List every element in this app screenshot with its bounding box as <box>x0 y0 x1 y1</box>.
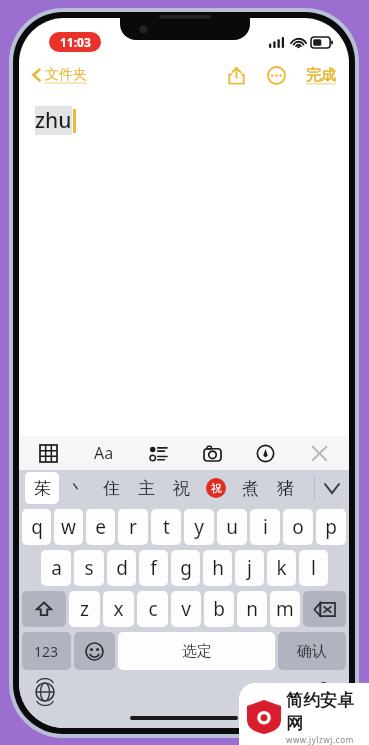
staticText: s <box>84 555 94 581</box>
button[interactable]: Markup <box>254 442 277 465</box>
button[interactable]: 123 <box>22 632 71 670</box>
button[interactable]: More options <box>264 63 289 88</box>
button[interactable]: 猪 <box>268 472 303 504</box>
button[interactable]: 文件夹 <box>27 63 91 87</box>
button[interactable]: 祝 <box>199 472 233 504</box>
button[interactable]: p <box>316 509 346 545</box>
button[interactable]: a <box>41 550 71 586</box>
button[interactable]: Emoji <box>74 632 115 670</box>
staticText: 简约安卓网 <box>286 690 369 734</box>
staticText: k <box>276 555 287 581</box>
button[interactable]: u <box>217 509 247 545</box>
button[interactable]: 住 <box>94 472 129 504</box>
staticText: h <box>212 555 224 581</box>
staticText: 确认 <box>297 642 327 661</box>
staticText: w <box>61 514 76 540</box>
button[interactable]: w <box>54 509 83 545</box>
button[interactable]: q <box>22 509 51 545</box>
button[interactable]: Dictation <box>312 678 335 706</box>
staticText: m <box>276 596 294 622</box>
staticText: 祝 <box>211 481 222 495</box>
button[interactable]: Aa <box>91 439 117 467</box>
button[interactable]: b <box>204 591 234 627</box>
button[interactable]: e <box>86 509 115 545</box>
button[interactable]: c <box>137 591 168 627</box>
button[interactable]: o <box>283 509 313 545</box>
button[interactable]: Table <box>37 442 60 465</box>
staticText: 住 <box>103 478 120 499</box>
button[interactable]: v <box>171 591 201 627</box>
staticText: zhu <box>35 106 72 135</box>
staticText: l <box>311 555 316 581</box>
button[interactable]: y <box>184 509 214 545</box>
button[interactable]: m <box>270 591 300 627</box>
staticText: i <box>263 514 268 540</box>
staticText: 丶 <box>68 478 85 499</box>
button[interactable]: k <box>267 550 296 586</box>
staticText: y <box>194 514 204 540</box>
button[interactable]: f <box>139 550 168 586</box>
staticText: r <box>129 514 137 540</box>
staticText: g <box>180 555 192 581</box>
button[interactable]: 煮 <box>233 472 268 504</box>
staticText: c <box>148 596 158 622</box>
button[interactable]: Close keyboard <box>308 442 331 465</box>
button[interactable]: t <box>151 509 181 545</box>
button[interactable]: Shift <box>22 591 66 627</box>
staticText: x <box>113 596 124 622</box>
button[interactable]: z <box>69 591 100 627</box>
staticText: d <box>116 555 128 581</box>
staticText: u <box>226 514 238 540</box>
button[interactable]: Checklist <box>147 442 170 465</box>
button[interactable]: d <box>107 550 136 586</box>
staticText: q <box>31 514 43 540</box>
staticText: f <box>150 555 157 581</box>
button[interactable]: 丶 <box>59 472 94 504</box>
button[interactable]: i <box>250 509 280 545</box>
button[interactable]: 祝 <box>164 472 199 504</box>
staticText: 11:03 <box>60 34 91 50</box>
button[interactable]: 完成 <box>303 63 339 88</box>
button[interactable]: Camera <box>201 442 224 465</box>
staticText: b <box>213 596 225 622</box>
button[interactable]: r <box>118 509 148 545</box>
button[interactable]: n <box>237 591 267 627</box>
button[interactable]: 选定 <box>118 632 275 670</box>
staticText: 完成 <box>306 66 336 85</box>
staticText: 煮 <box>242 478 259 499</box>
staticText: p <box>325 514 337 540</box>
button[interactable]: Switch keyboard <box>31 678 59 706</box>
button[interactable]: x <box>103 591 134 627</box>
staticText: 茱 <box>34 478 51 499</box>
button[interactable]: s <box>74 550 104 586</box>
button[interactable]: j <box>235 550 264 586</box>
staticText: 选定 <box>182 642 212 661</box>
staticText: www.jylzwj.com <box>286 734 354 745</box>
staticText: o <box>292 514 304 540</box>
staticText: a <box>51 555 62 581</box>
staticText: n <box>246 596 258 622</box>
staticText: 文件夹 <box>45 66 87 84</box>
button[interactable]: 确认 <box>278 632 346 670</box>
staticText: 123 <box>34 642 59 661</box>
button[interactable]: 茱 <box>25 472 59 504</box>
staticText: t <box>163 514 170 540</box>
button[interactable]: Expand candidates <box>315 472 349 504</box>
button[interactable]: h <box>203 550 232 586</box>
button[interactable]: g <box>171 550 200 586</box>
staticText: 主 <box>138 478 155 499</box>
button[interactable]: 主 <box>129 472 164 504</box>
staticText: v <box>181 596 191 622</box>
staticText: z <box>80 596 89 622</box>
staticText: 猪 <box>277 478 294 499</box>
staticText: e <box>95 514 106 540</box>
staticText: 祝 <box>173 478 190 499</box>
staticText: Aa <box>94 442 114 464</box>
staticText: j <box>247 555 252 581</box>
button[interactable]: Backspace <box>303 591 346 627</box>
button[interactable]: l <box>299 550 328 586</box>
button[interactable]: Share <box>225 63 248 88</box>
